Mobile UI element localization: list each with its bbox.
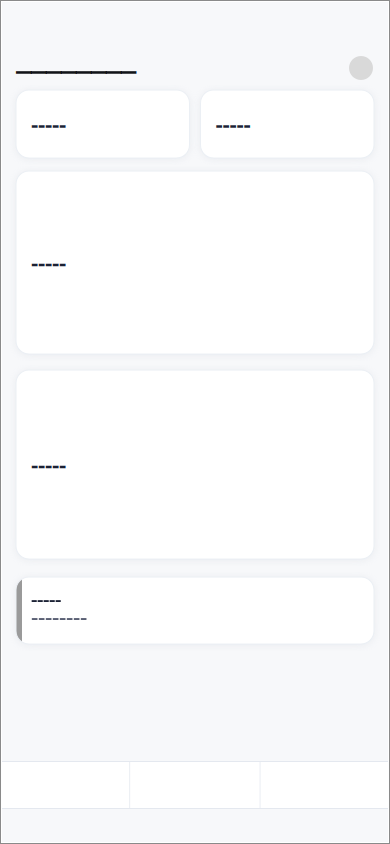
staticText: ----- <box>31 109 66 139</box>
button[interactable]: Settings <box>261 761 390 809</box>
staticText: -------- <box>31 601 87 631</box>
staticText: ----- <box>31 585 61 612</box>
staticText: ----- <box>31 449 66 479</box>
button[interactable]: Home <box>0 761 129 809</box>
button[interactable]: ----- <box>16 90 189 158</box>
button[interactable]: ----- <box>200 90 374 158</box>
button[interactable]: Activity <box>130 761 260 809</box>
staticText: ----- <box>31 247 66 277</box>
staticText: ----- <box>215 109 250 139</box>
staticText: ________ <box>16 28 136 78</box>
button[interactable]: Account <box>349 56 373 80</box>
button[interactable]: ----- <box>0 577 390 644</box>
